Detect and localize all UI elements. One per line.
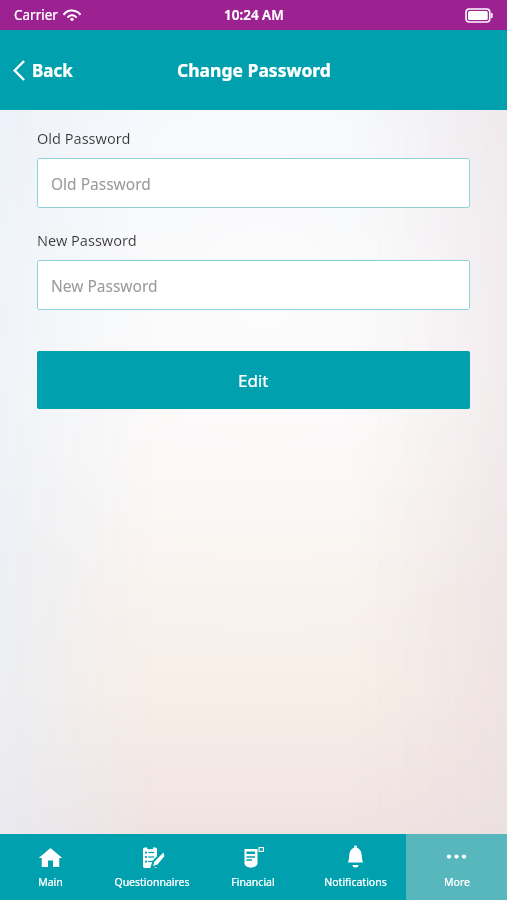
button[interactable]: Main bbox=[0, 834, 101, 900]
staticText: Financial bbox=[231, 875, 275, 889]
staticText: Main bbox=[38, 875, 63, 889]
staticText: Notifications bbox=[324, 875, 387, 889]
button[interactable]: Financial bbox=[202, 834, 304, 900]
button[interactable]: More bbox=[406, 834, 507, 900]
staticText: Edit bbox=[238, 369, 269, 392]
button[interactable]: Old Password bbox=[37, 158, 470, 208]
staticText: More bbox=[444, 875, 470, 889]
staticText: Back bbox=[32, 59, 73, 82]
staticText: New Password bbox=[51, 275, 158, 296]
staticText: Change Password bbox=[177, 58, 331, 82]
staticText: Carrier bbox=[14, 6, 58, 24]
staticText: New Password bbox=[37, 230, 137, 250]
staticText: Questionnaires bbox=[114, 875, 190, 889]
button[interactable]: Back bbox=[0, 51, 89, 90]
staticText: 10:24 AM bbox=[224, 6, 284, 24]
staticText: Old Password bbox=[37, 128, 131, 148]
button[interactable]: New Password bbox=[37, 260, 470, 310]
button[interactable]: Edit bbox=[37, 351, 470, 409]
button[interactable]: Notifications bbox=[304, 834, 406, 900]
staticText: Old Password bbox=[51, 173, 151, 194]
button[interactable]: Questionnaires bbox=[101, 834, 202, 900]
